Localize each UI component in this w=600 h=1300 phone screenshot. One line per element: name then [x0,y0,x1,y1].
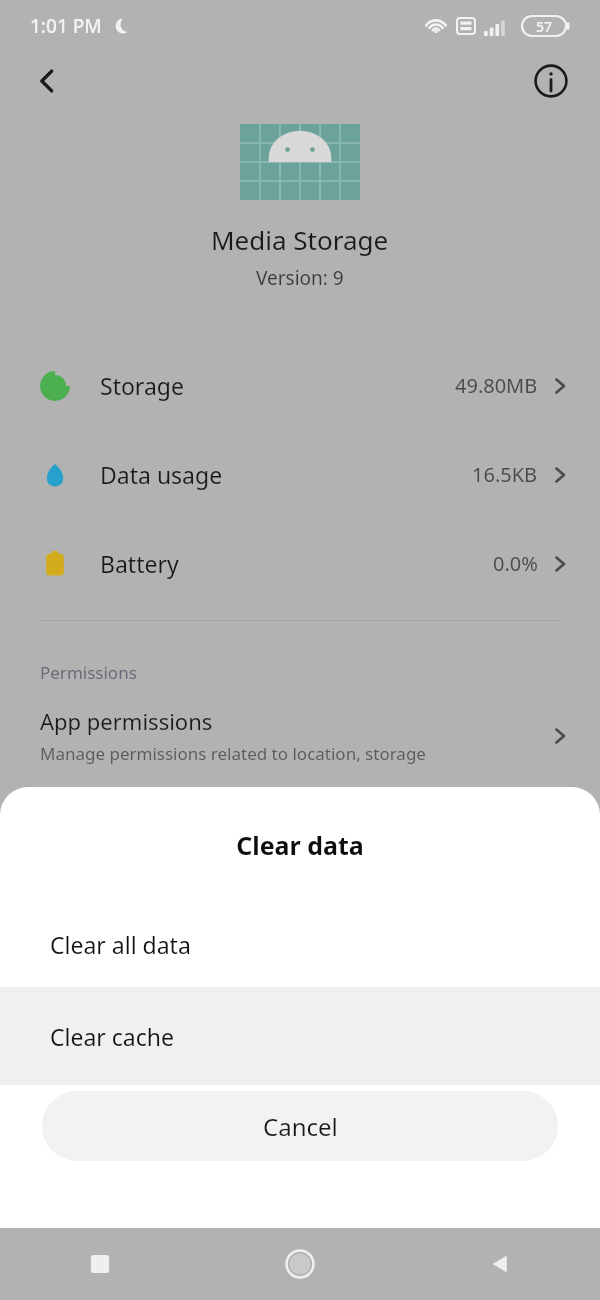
staticText: Version: 9 [256,265,344,291]
staticText: App permissions [40,706,213,736]
button[interactable]: Home [200,1228,400,1300]
button[interactable]: Storage [0,341,600,430]
button[interactable]: Recent apps [0,1228,200,1300]
staticText: Clear cache [50,1021,174,1052]
staticText: Clear all data [50,929,191,960]
staticText: Data usage [100,459,472,490]
button[interactable]: Back [22,56,72,106]
staticText: Media Storage [211,222,389,257]
staticText: Battery [100,548,493,579]
staticText: 1:01 PM [30,13,102,39]
staticText: 57 [536,17,553,36]
button[interactable]: Data usage [0,430,600,519]
button[interactable]: App permissions [0,706,600,765]
staticText: Cancel [263,1110,338,1143]
button[interactable]: Clear cache [0,987,600,1085]
button[interactable]: Back [400,1228,600,1300]
button[interactable]: App info [526,56,576,106]
staticText: Clear data [236,828,364,862]
button[interactable]: Clear all data [0,902,600,987]
staticText: 49.80MB [455,372,538,399]
staticText: 0.0% [493,550,538,577]
button[interactable]: Cancel [42,1091,558,1161]
staticText: Permissions [40,661,137,684]
button[interactable]: Battery [0,519,600,608]
staticText: Manage permissions related to location, … [40,742,426,765]
staticText: Storage [100,370,455,401]
staticText: 16.5KB [472,461,538,488]
